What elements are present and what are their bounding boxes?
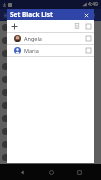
other: Add: [10, 22, 19, 31]
button[interactable]: Angela: [7, 33, 94, 44]
button[interactable]: Maria: [7, 45, 94, 56]
button[interactable]: Menu: [2, 11, 11, 20]
button[interactable]: Close: [81, 10, 91, 20]
button[interactable]: Home: [45, 166, 57, 178]
staticText: 4:49: [88, 1, 98, 8]
staticText: Angela: [24, 35, 42, 42]
button[interactable]: Back: [16, 166, 28, 178]
button[interactable]: Add: [7, 20, 94, 32]
staticText: Maria: [24, 47, 39, 54]
staticText: Set Black List: [10, 10, 53, 19]
button[interactable]: More options: [90, 11, 99, 20]
button[interactable]: Recents: [73, 166, 85, 178]
